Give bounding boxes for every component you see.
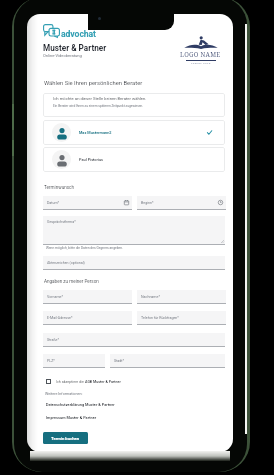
button[interactable]: Nachname* — [137, 290, 226, 303]
button[interactable]: Stadt* — [110, 354, 225, 367]
staticText: Telefon für Rückfragen* — [141, 316, 179, 320]
staticText: Angaben zu meiner Person — [44, 279, 99, 284]
staticText: Ich akzeptiere die — [56, 380, 85, 384]
staticText: E-Mail-Adresse* — [47, 316, 73, 320]
staticText: Datum* — [47, 201, 60, 205]
button[interactable]: E-Mail-Adresse* — [43, 311, 132, 324]
button[interactable]: Datum* — [43, 196, 132, 209]
staticText: LOGO NAME — [180, 50, 221, 59]
button[interactable]: Vorname* — [43, 290, 132, 303]
staticText: Online-Videoberatung — [43, 53, 82, 58]
staticText: Aktenzeichen (optional) — [47, 261, 85, 265]
staticText: Ein Berater wird Ihnen zu einem späteren… — [53, 104, 144, 108]
other: Selected — [207, 130, 212, 135]
button[interactable]: Ich möchte an dieser Stelle keinen Berat… — [43, 93, 225, 117]
staticText: AGB Muster & Partner — [85, 380, 121, 384]
staticText: Stadt* — [114, 359, 125, 363]
button[interactable]: Ich akzeptiere die — [46, 379, 121, 384]
button[interactable]: Termin buchen — [43, 432, 88, 444]
button[interactable]: Telefon für Rückfragen* — [137, 311, 226, 324]
staticText: Termin buchen — [51, 436, 80, 441]
staticText: Impressum Muster & Partner — [46, 415, 97, 420]
staticText: Max Mustermann2 — [79, 130, 112, 135]
button[interactable]: Datenschutzerklärung Muster & Partner — [46, 402, 115, 407]
staticText: Beginn* — [141, 201, 154, 205]
staticText: Paul Pistorius — [79, 157, 104, 162]
staticText: advochat — [61, 29, 96, 39]
other: Pick date — [124, 200, 129, 205]
staticText: Muster & Partner — [43, 43, 107, 53]
button[interactable]: Max Mustermann2 — [43, 120, 225, 145]
staticText: Terminwunsch — [44, 185, 75, 190]
staticText: Wenn möglich, bitte die Daten des Gegner… — [46, 246, 124, 250]
staticText: Nachname* — [141, 295, 160, 299]
staticText: Vorname* — [47, 295, 64, 299]
other: Pick time — [218, 200, 223, 205]
button[interactable]: Aktenzeichen (optional) — [43, 256, 225, 269]
staticText: Datenschutzerklärung Muster & Partner — [46, 402, 115, 407]
staticText: Weitere Informationen: — [45, 392, 83, 396]
button[interactable]: Straße* — [43, 333, 225, 346]
button[interactable]: PLZ* — [43, 354, 105, 367]
staticText: PLZ* — [47, 359, 55, 363]
button[interactable]: Gesprächsthema* — [43, 216, 225, 244]
staticText: Gesprächsthema* — [47, 220, 76, 224]
staticText: Wählen Sie Ihren persönlichen Berater — [44, 80, 143, 87]
button[interactable]: Beginn* — [137, 196, 226, 209]
button[interactable]: Paul Pistorius — [43, 147, 225, 172]
staticText: Ich möchte an dieser Stelle keinen Berat… — [53, 96, 147, 101]
staticText: Straße* — [47, 338, 60, 342]
button[interactable]: Impressum Muster & Partner — [46, 415, 97, 420]
staticText: LUXURY GOLD — [191, 62, 211, 65]
